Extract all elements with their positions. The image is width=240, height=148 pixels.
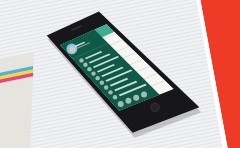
button[interactable]: Phone showing green messaging app with n… — [0, 0, 240, 148]
